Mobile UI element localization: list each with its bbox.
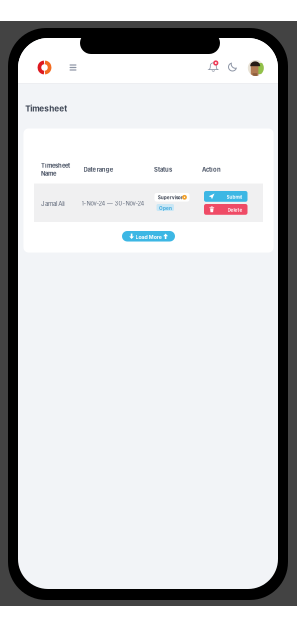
staticText: Open	[159, 206, 172, 211]
staticText: Submit	[226, 194, 242, 200]
button[interactable]: Submit	[204, 191, 247, 202]
staticText: Timesheet	[41, 162, 70, 169]
staticText: More	[149, 234, 162, 240]
staticText: 30-Nov-24	[114, 200, 144, 207]
staticText: Jamal	[41, 200, 57, 207]
button[interactable]: Notifications	[205, 58, 221, 75]
button[interactable]: Menu	[64, 59, 81, 76]
staticText: Action	[202, 166, 221, 173]
button[interactable]: Home	[34, 57, 55, 78]
staticText: Timesheet	[25, 103, 67, 113]
staticText: Supervisor	[158, 195, 183, 200]
staticText: 1-Nov-24	[81, 200, 105, 207]
staticText: Status	[154, 166, 172, 173]
button[interactable]: Load	[122, 231, 175, 241]
button[interactable]: Delete	[204, 204, 247, 215]
staticText: Name	[41, 170, 56, 177]
staticText: Load	[135, 234, 147, 240]
staticText: range	[97, 166, 113, 173]
staticText: Date	[83, 166, 95, 173]
staticText: Delete	[227, 207, 242, 213]
button[interactable]: Toggle dark mode	[224, 59, 240, 75]
staticText: Ali	[58, 200, 64, 207]
button[interactable]: Profile	[245, 57, 267, 79]
staticText: —	[107, 200, 113, 207]
